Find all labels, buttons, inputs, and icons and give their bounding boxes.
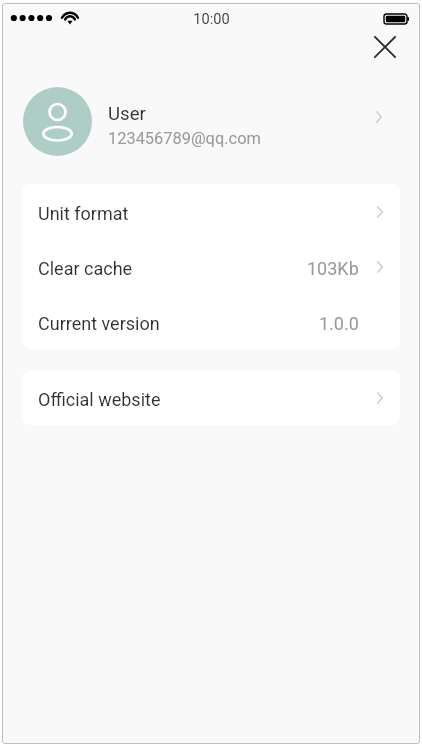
button[interactable]: Current version <box>22 294 400 349</box>
button[interactable]: Clear cache <box>22 239 400 294</box>
staticText: Clear cache <box>38 258 133 279</box>
staticText: 1.0.0 <box>319 313 359 334</box>
staticText: 123456789@qq.com <box>108 129 261 148</box>
staticText: Official website <box>38 389 161 410</box>
button[interactable]: Close <box>368 30 402 64</box>
button[interactable]: Official website <box>22 370 400 425</box>
button[interactable]: Unit format <box>22 184 400 239</box>
staticText: 10:00 <box>193 10 230 27</box>
button[interactable]: User <box>2 69 420 173</box>
staticText: 103Kb <box>307 258 359 279</box>
staticText: Current version <box>38 313 160 334</box>
staticText: User <box>108 103 146 125</box>
staticText: Unit format <box>38 203 129 224</box>
